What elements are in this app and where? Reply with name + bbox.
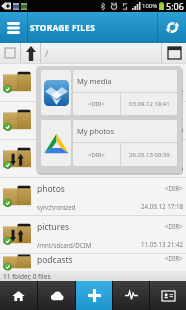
button[interactable]: Go up one level: [21, 43, 40, 63]
button[interactable]: photos: [0, 178, 186, 215]
staticText: /mnt/sdcard/DCIM: [37, 241, 92, 249]
staticText: My media: [77, 76, 112, 86]
staticText: My photos: [77, 126, 115, 136]
button[interactable]: My photos: [41, 120, 71, 166]
staticText: 26.05.13 00:39: [129, 151, 170, 159]
staticText: <DIR>: [165, 70, 183, 78]
button[interactable]: Activity: [113, 281, 149, 310]
button[interactable]: notes: [0, 102, 186, 139]
button[interactable]: Account: [150, 281, 186, 310]
button[interactable]: My media: [41, 70, 71, 115]
staticText: /: [45, 47, 49, 59]
staticText: <DIR>: [88, 151, 106, 159]
staticText: 5:06: [166, 0, 184, 12]
staticText: movies: [37, 145, 66, 157]
staticText: synchronized: [37, 127, 76, 135]
staticText: podcasts: [37, 254, 73, 266]
staticText: <DIR>: [165, 146, 183, 154]
staticText: <DIR>: [165, 108, 183, 116]
staticText: /mnt/sdcard/Movies: [37, 165, 96, 173]
button[interactable]: Change view: [162, 43, 186, 63]
staticText: notes: [37, 107, 60, 119]
staticText: pictures: [37, 221, 70, 233]
button[interactable]: Add: [76, 281, 112, 310]
staticText: 24.09.12 17:18: [141, 202, 183, 210]
button[interactable]: Open navigation menu: [0, 12, 27, 43]
staticText: 09.02.13 14:22: [141, 88, 183, 96]
staticText: <DIR>: [165, 184, 183, 192]
staticText: <DIR>: [165, 222, 183, 230]
button[interactable]: My photos: [73, 120, 177, 166]
staticText: 100%: [142, 2, 158, 10]
button[interactable]: My media: [73, 70, 177, 115]
staticText: <DIR>: [88, 100, 106, 108]
button[interactable]: Home: [0, 281, 37, 310]
staticText: 11 folder, 0 files: [3, 272, 51, 281]
staticText: music: [37, 69, 61, 81]
button[interactable]: movies: [0, 140, 186, 177]
staticText: 02.01.13 19:05: [141, 164, 183, 172]
staticText: STORAGE FILES: [30, 22, 96, 33]
staticText: 03.09.12 18:41: [129, 100, 170, 108]
button[interactable]: Cloud storage: [38, 281, 75, 310]
staticText: <DIR>: [165, 254, 183, 262]
staticText: 11.05.13 21:42: [141, 240, 183, 248]
staticText: photos: [37, 183, 65, 195]
staticText: synchronized: [37, 203, 76, 211]
button[interactable]: Select all: [0, 43, 20, 63]
button[interactable]: music: [0, 64, 186, 101]
staticText: 18.11.12 09:40: [141, 126, 183, 134]
button[interactable]: pictures: [0, 216, 186, 253]
button[interactable]: Refresh: [158, 12, 186, 43]
button[interactable]: podcasts: [0, 254, 186, 271]
staticText: synchronized: [37, 89, 76, 97]
